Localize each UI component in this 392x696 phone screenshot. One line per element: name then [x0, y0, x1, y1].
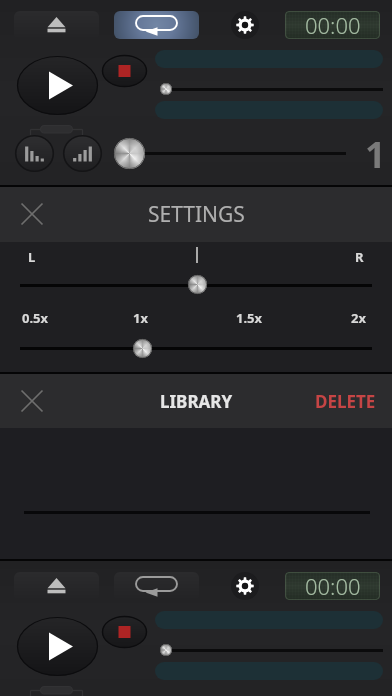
button[interactable]: Stop — [102, 616, 147, 648]
button[interactable]: Close — [18, 387, 46, 415]
staticText: 2x — [351, 309, 366, 327]
button[interactable]: Loop — [114, 11, 199, 39]
button[interactable]: Eject — [14, 11, 99, 39]
button[interactable]: Settings — [231, 572, 259, 600]
staticText: 1.5x — [236, 309, 263, 327]
button[interactable]: Close — [18, 200, 46, 228]
button[interactable]: Levels — [15, 135, 54, 172]
button[interactable]: Play — [17, 617, 98, 676]
staticText: DELETE — [315, 390, 376, 413]
staticText: 1x — [133, 309, 148, 327]
button[interactable]: Eject — [14, 572, 99, 600]
staticText: 00:00 — [305, 11, 361, 38]
button[interactable]: Equalizer — [63, 135, 102, 172]
staticText: 0.5x — [22, 309, 49, 327]
staticText: SETTINGS — [148, 200, 245, 229]
staticText: LIBRARY — [160, 390, 233, 413]
button[interactable]: Settings — [231, 11, 259, 39]
button[interactable]: Play — [17, 56, 98, 115]
staticText: 1 — [365, 130, 386, 179]
button[interactable]: DELETE — [299, 376, 392, 427]
button[interactable]: Stop — [102, 55, 147, 87]
button[interactable]: Loop — [114, 572, 199, 600]
staticText: R — [355, 248, 364, 266]
staticText: 00:00 — [305, 572, 361, 599]
staticText: L — [28, 248, 36, 266]
